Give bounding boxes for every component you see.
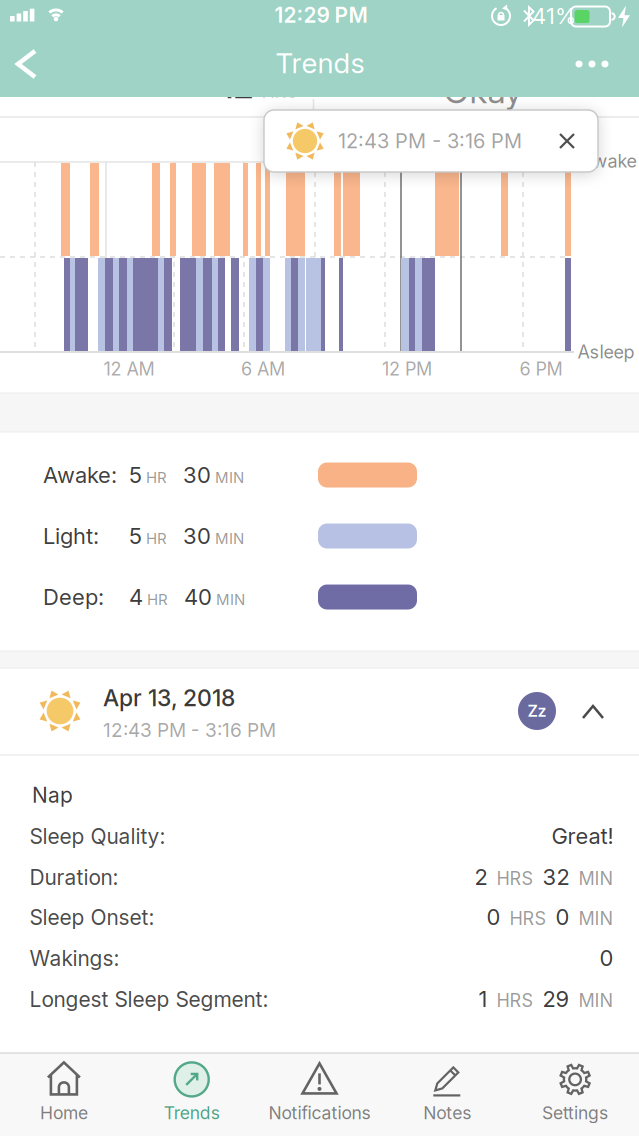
staticText: MIN [215,468,244,487]
staticText: 1 [478,986,487,1012]
staticText: Trends [164,1102,220,1124]
staticText: Zz [527,701,546,721]
staticText: Light: [43,523,99,549]
staticText: HRS [496,990,533,1011]
staticText: 6 PM [519,358,562,380]
staticText: 30 [183,523,211,549]
staticText: MIN [578,868,613,889]
button[interactable]: Back [11,48,43,80]
staticText: Sleep Quality: [29,824,165,849]
staticText: Wakings: [29,946,119,971]
staticText: Awake: [43,462,117,488]
staticText: Apr 13, 2018 [103,684,235,712]
staticText: HRS [261,80,298,102]
button[interactable]: Notifications [256,1060,383,1124]
staticText: Notifications [268,1102,370,1124]
staticText: MIN [578,990,613,1011]
staticText: 12 PM [382,358,432,380]
staticText: 12:43 PM - 3:16 PM [338,129,522,153]
staticText: HRS [496,868,533,889]
staticText: MIN [578,908,613,929]
staticText: 12:43 PM - 3:16 PM [103,718,276,741]
button[interactable]: Notes [383,1060,511,1124]
staticText: 0 [486,904,500,930]
staticText: 12 AM [103,358,154,380]
staticText: Longest Sleep Segment: [29,987,268,1012]
staticText: Duration: [29,865,118,890]
button[interactable]: Collapse sleep details [0,668,639,755]
button[interactable]: Close [556,130,578,152]
staticText: Notes [423,1102,471,1124]
staticText: HR [147,590,168,609]
staticText: 40 [184,584,212,610]
staticText: 5 [129,462,142,488]
staticText: 0 [599,945,613,971]
staticText: 0 [555,904,569,930]
staticText: Great! [551,823,613,849]
staticText: Home [40,1102,88,1124]
staticText: Sleep Onset: [29,905,154,930]
staticText: 29 [542,986,569,1012]
staticText: HR [146,468,167,487]
button[interactable]: Trends [128,1060,256,1124]
staticText: Awake [581,150,636,172]
staticText: Okay [443,70,522,111]
staticText: 4 [129,584,143,610]
staticText: MIN [216,590,245,609]
staticText: Trends [275,46,364,80]
staticText: 12 [220,65,253,106]
button[interactable]: Home [0,1060,128,1124]
staticText: Deep: [43,584,104,610]
staticText: HR [146,529,167,548]
staticText: 30 [183,462,211,488]
staticText: 5 [129,523,142,549]
staticText: 12:29 PM [274,2,367,28]
staticText: Nap [32,782,73,808]
button[interactable]: More options [575,60,608,67]
staticText: 41% [532,3,576,29]
staticText: 2 [474,864,487,890]
staticText: 6 AM [241,358,285,380]
staticText: 32 [542,864,569,890]
staticText: MIN [215,529,244,548]
staticText: Settings [542,1102,608,1124]
staticText: HRS [509,908,546,929]
staticText: Asleep [577,341,634,363]
button[interactable]: Settings [511,1060,639,1124]
